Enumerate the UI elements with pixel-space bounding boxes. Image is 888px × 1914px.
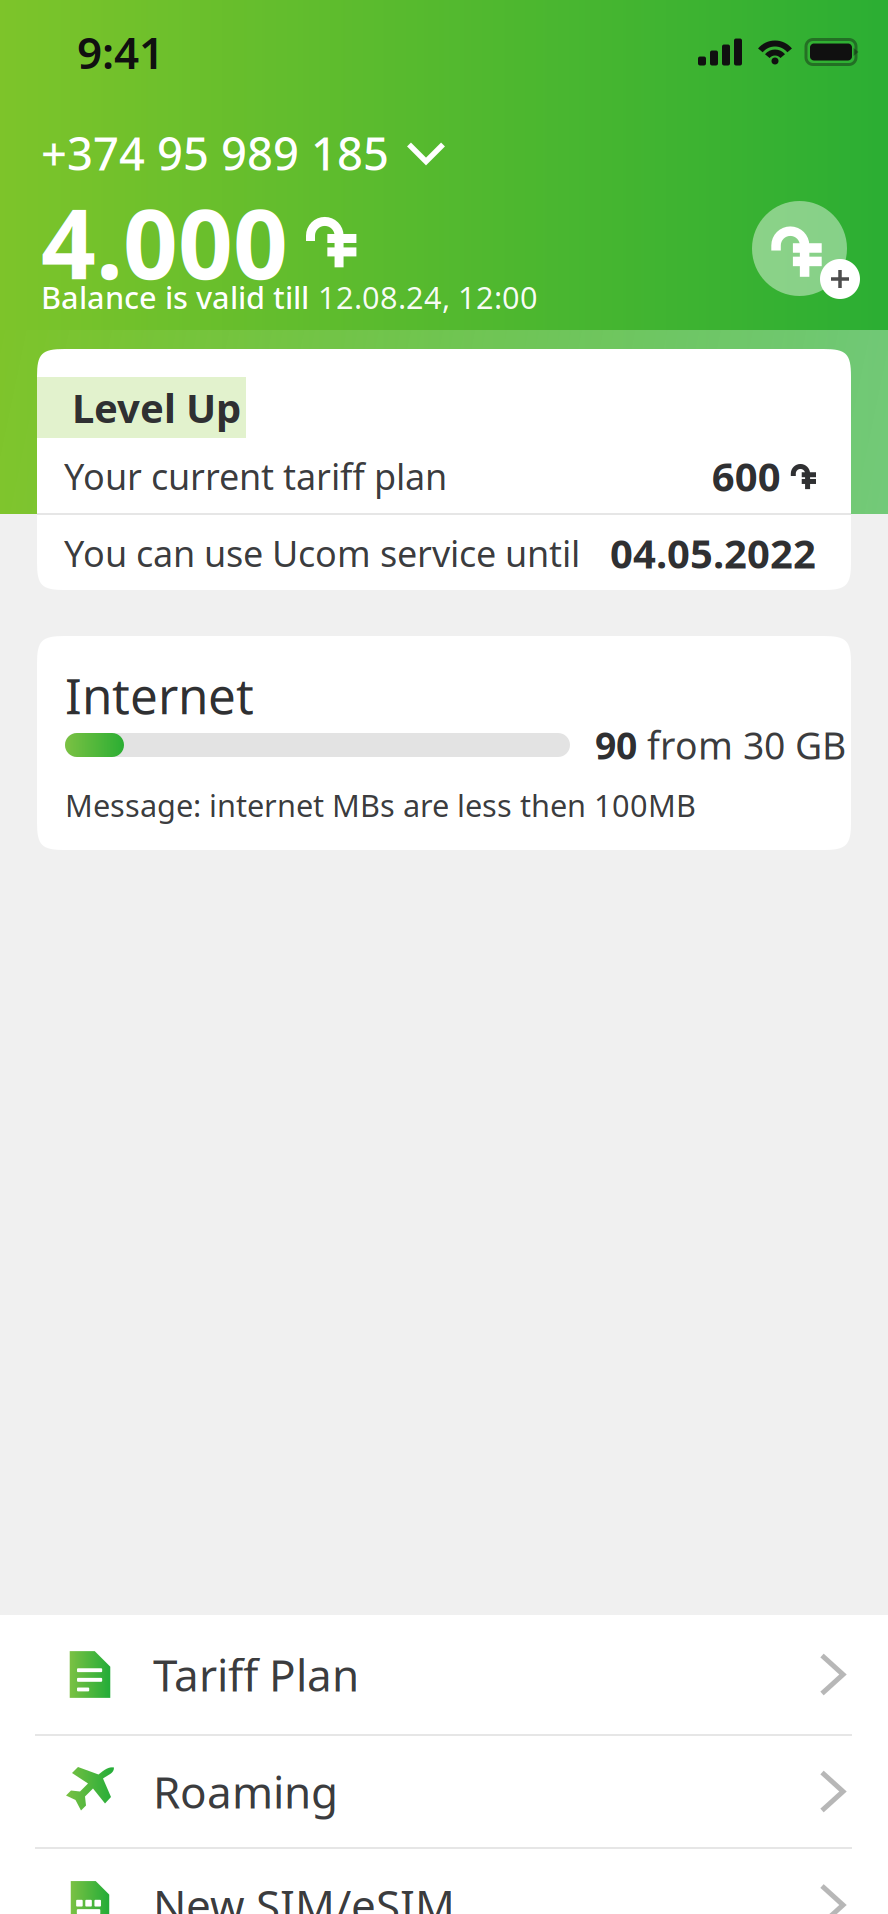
staticText: Roaming xyxy=(153,1762,338,1821)
button[interactable]: New SIM/eSIM xyxy=(0,1849,888,1914)
staticText: You can use Ucom service until xyxy=(64,529,580,577)
staticText: Internet xyxy=(65,662,254,728)
button[interactable]: Roaming xyxy=(0,1736,888,1847)
button[interactable]: Tariff Plan xyxy=(0,1615,888,1734)
staticText: 9:41 xyxy=(77,23,164,81)
staticText: 600 xyxy=(712,449,781,502)
button[interactable]: +374 95 989 185 xyxy=(0,94,888,181)
staticText: Level Up xyxy=(72,381,241,434)
staticText: Tariff Plan xyxy=(153,1645,359,1704)
staticText: +374 95 989 185 xyxy=(41,123,389,183)
staticText: 4.000 xyxy=(41,178,288,306)
button[interactable]: Top up balance xyxy=(752,203,859,301)
staticText: from 30 GB xyxy=(647,720,846,770)
staticText: Balance is valid till xyxy=(41,277,309,317)
staticText: Your current tariff plan xyxy=(64,452,447,500)
staticText: 90 xyxy=(595,720,647,770)
staticText: 04.05.2022 xyxy=(610,526,816,579)
staticText: Message: internet MBs are less then 100M… xyxy=(65,785,696,825)
staticText: 12.08.24, 12:00 xyxy=(318,277,538,317)
staticText: New SIM/eSIM xyxy=(153,1876,455,1914)
